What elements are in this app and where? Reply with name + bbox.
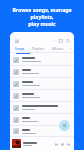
staticText: Playlists: [32, 47, 45, 51]
staticText: Albums: [52, 47, 64, 51]
button[interactable]: Previous: [53, 141, 59, 147]
button[interactable]: Equalizer: [57, 37, 64, 44]
button[interactable]: Shuffle play: [59, 120, 70, 131]
button[interactable]: Song options: [10, 54, 74, 65]
button[interactable]: Previous: [10, 137, 74, 150]
button[interactable]: More tabs: [67, 45, 74, 52]
button[interactable]: Song options: [10, 114, 74, 125]
button[interactable]: Pause: [59, 141, 65, 147]
button[interactable]: Search: [64, 37, 71, 44]
button[interactable]: Song options: [66, 117, 71, 122]
button[interactable]: Song options: [66, 129, 71, 134]
staticText: Browse songs, manage playlists, play mus…: [3, 6, 81, 27]
button[interactable]: Menu: [13, 37, 20, 44]
button[interactable]: Next: [65, 141, 71, 147]
button[interactable]: Song options: [10, 78, 74, 89]
button[interactable]: Songs: [10, 45, 29, 52]
button[interactable]: Song options: [10, 66, 74, 77]
button[interactable]: Albums: [48, 45, 67, 52]
staticText: Songs: [15, 47, 25, 51]
button[interactable]: Playlists: [29, 45, 48, 52]
button[interactable]: More options: [51, 37, 57, 43]
button[interactable]: Song options: [10, 126, 74, 136]
button[interactable]: Song options: [10, 90, 74, 101]
button[interactable]: Song options: [10, 102, 74, 113]
